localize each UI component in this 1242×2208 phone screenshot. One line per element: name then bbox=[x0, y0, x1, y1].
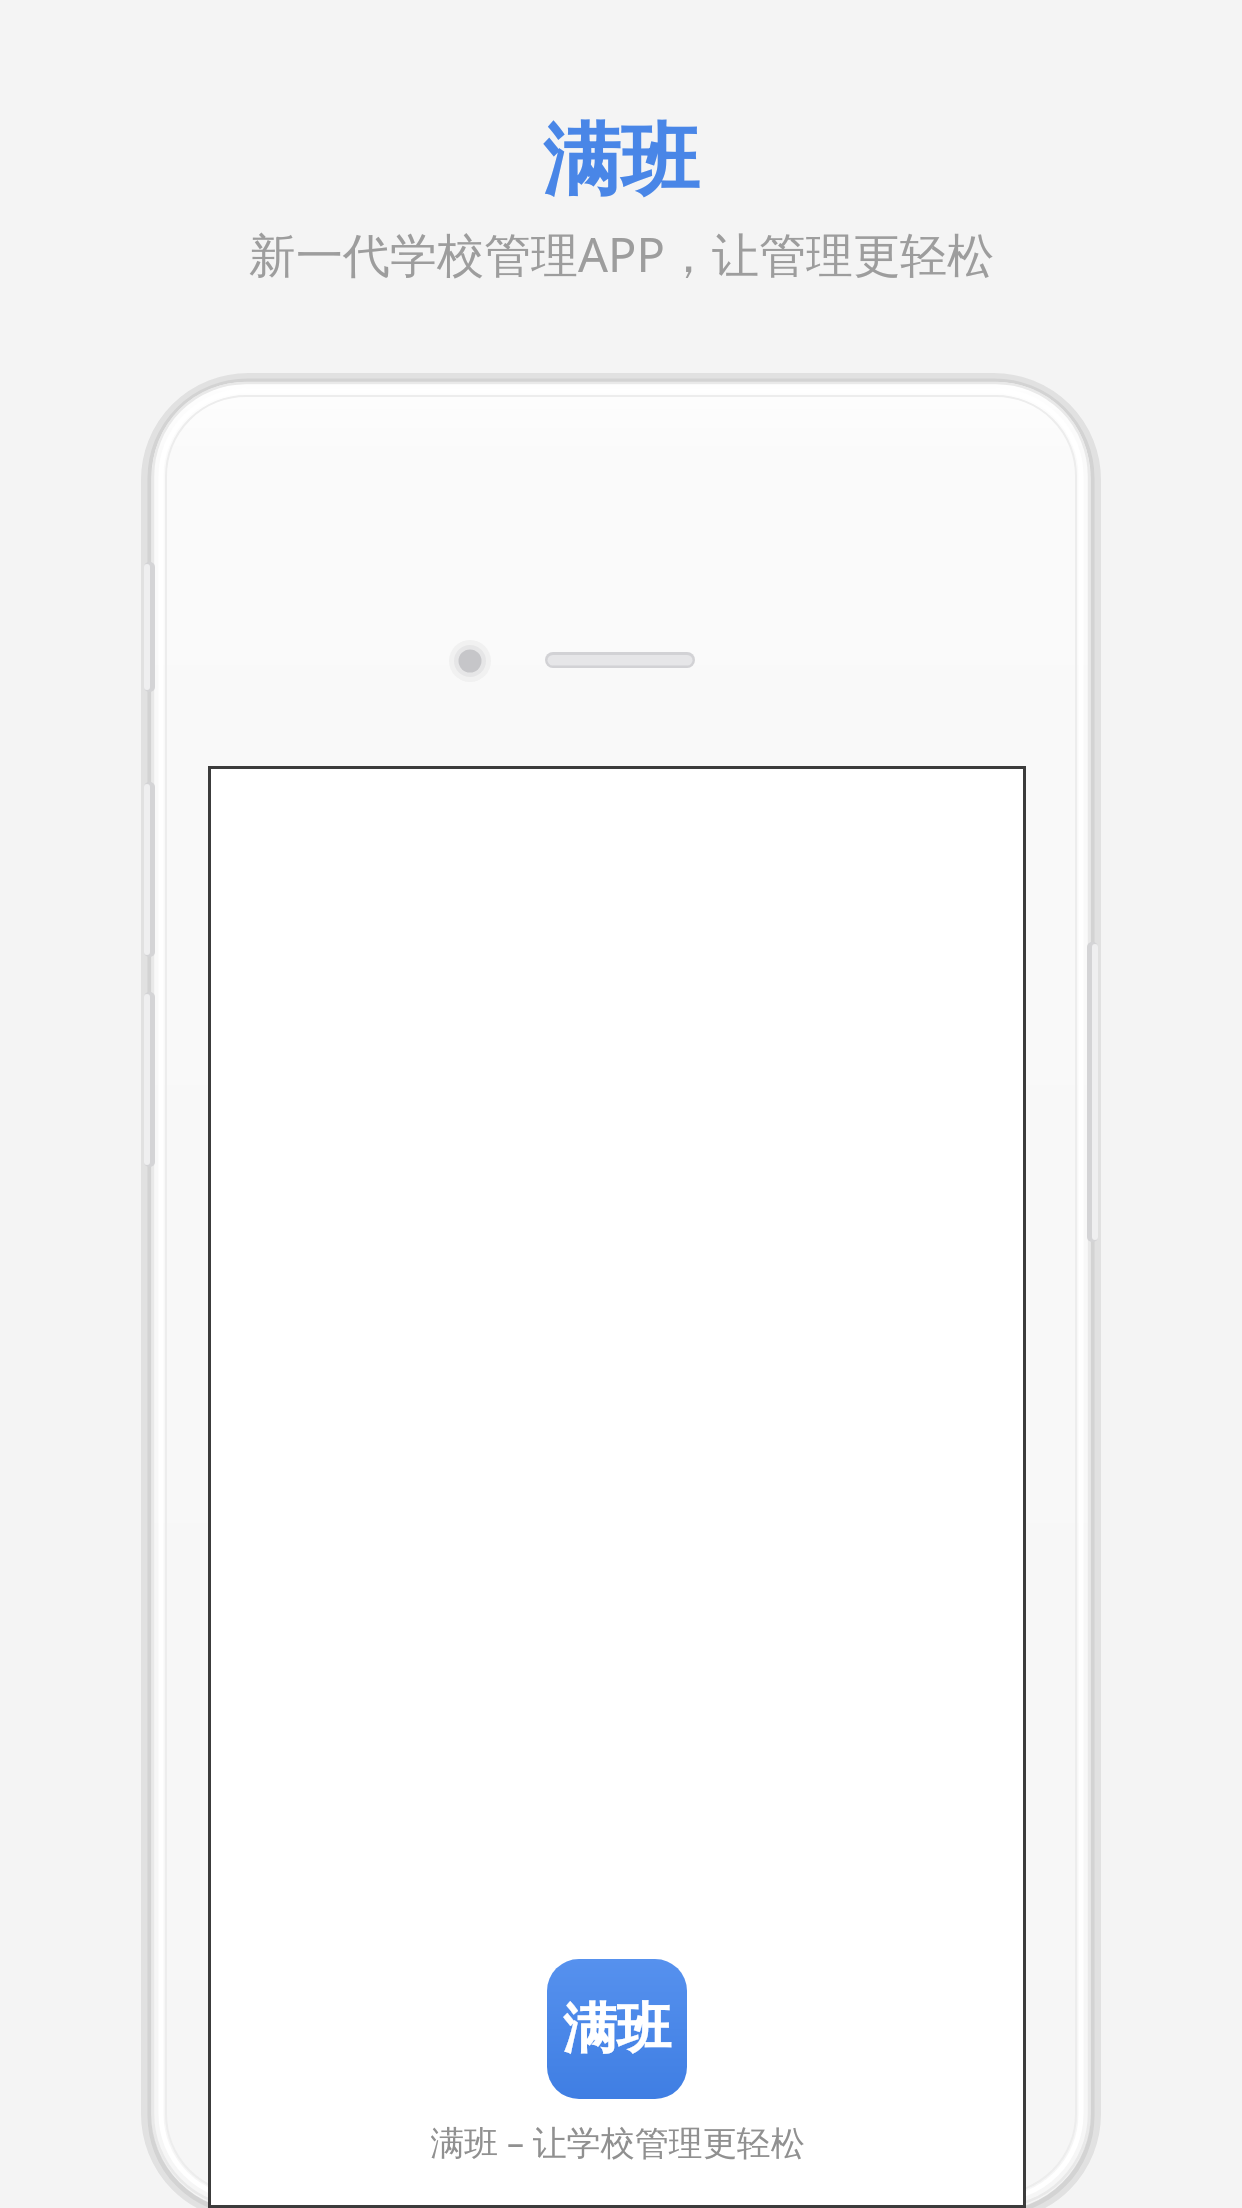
staticText: 满班 bbox=[563, 1995, 671, 2063]
staticText: 满班 bbox=[543, 112, 699, 210]
staticText: 满班 – 让学校管理更轻松 bbox=[430, 2119, 805, 2165]
staticText: 新一代学校管理APP，让管理更轻松 bbox=[249, 222, 994, 286]
button[interactable]: 满班 application icon bbox=[547, 1959, 687, 2099]
